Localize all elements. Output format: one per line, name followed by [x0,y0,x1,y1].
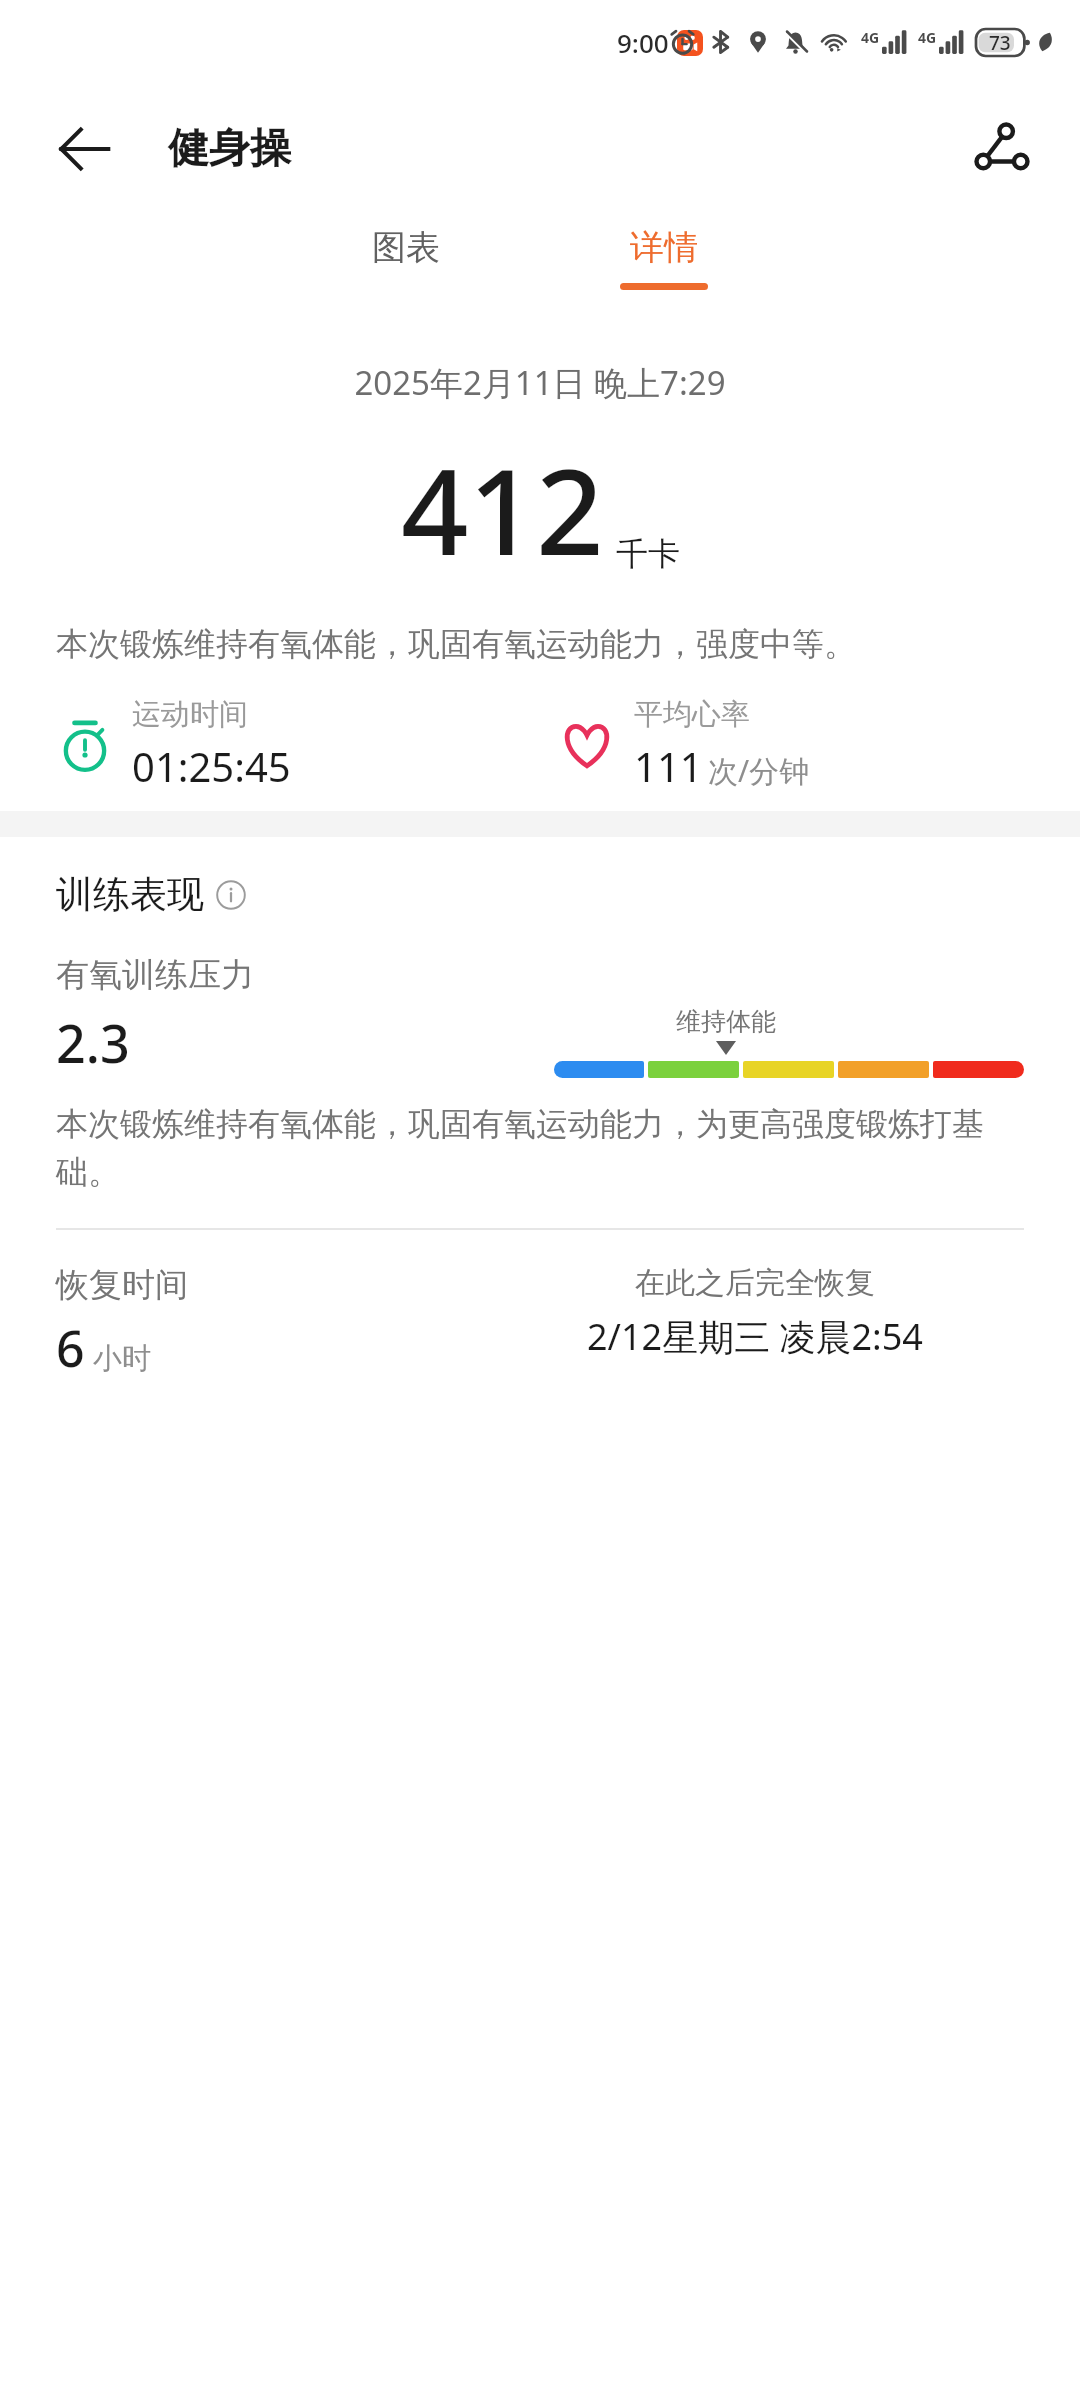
staticText: 4G [918,28,937,47]
staticText: 健身操 [168,123,291,175]
staticText: 维持体能 [676,1006,776,1037]
staticText: 2/12星期三 凌晨2:54 [587,1312,923,1361]
staticText: 恢复时间 [56,1264,188,1306]
staticText: 01:25:45 [132,739,291,793]
staticText: 2025年2月11日 晚上7:29 [0,360,1080,405]
staticText: 111 [634,739,703,793]
button[interactable]: Back [48,113,120,185]
staticText: 详情 [630,226,698,269]
button[interactable]: 平均心率 [558,696,1080,793]
staticText: 在此之后完全恢复 [635,1264,875,1302]
staticText: 平均心率 [634,696,750,733]
staticText: 6 [56,1314,85,1382]
button[interactable]: 训练表现 [56,871,246,918]
staticText: 4G [861,28,880,47]
staticText: 图表 [372,226,440,269]
button[interactable]: 详情 [600,214,728,302]
staticText: 运动时间 [132,696,248,733]
staticText: 73 [989,30,1011,56]
staticText: 2.3 [56,1007,130,1078]
staticText: 有氧训练压力 [56,954,254,996]
button[interactable]: 运动时间 [56,696,540,793]
staticText: 9:00 [617,25,669,60]
staticText: 小时 [93,1340,151,1377]
staticText: 本次锻炼维持有氧体能，巩固有氧运动能力，强度中等。 [56,624,1028,664]
button[interactable]: Share [964,111,1040,187]
staticText: 次/分钟 [708,750,810,791]
staticText: 412 [401,429,604,590]
button[interactable]: 图表 [352,214,460,295]
staticText: 千卡 [616,534,680,574]
staticText: 训练表现 [56,871,204,918]
staticText: 本次锻炼维持有氧体能，巩固有氧运动能力，为更高强度锻炼打基础。 [56,1104,1024,1192]
